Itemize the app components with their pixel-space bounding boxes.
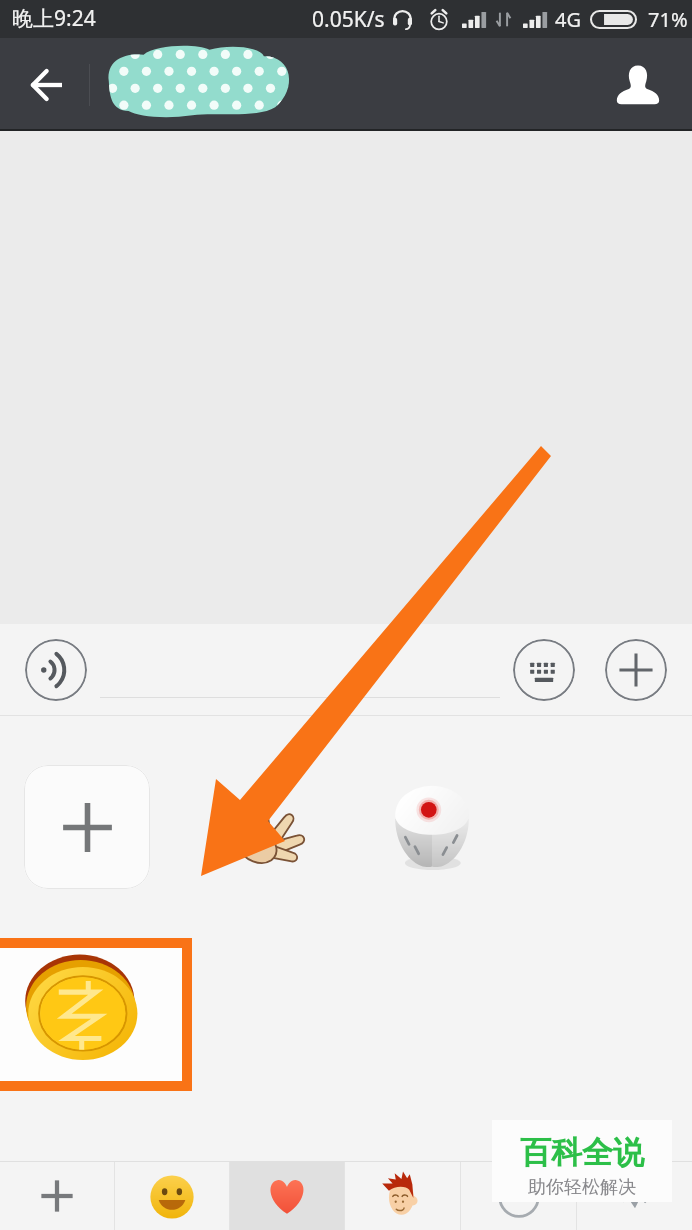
button[interactable]: Stickers xyxy=(345,1161,460,1230)
button[interactable]: Voice message xyxy=(25,639,87,701)
button[interactable]: Coin sticker xyxy=(0,938,192,1091)
button[interactable]: Emoticons xyxy=(461,1161,576,1230)
button[interactable]: Back xyxy=(0,38,92,131)
staticText: 71% xyxy=(648,6,688,33)
staticText: 晚上9:24 xyxy=(12,4,96,33)
button[interactable]: Contact info xyxy=(584,38,692,131)
button[interactable]: Add xyxy=(0,1161,114,1230)
button[interactable]: Smileys xyxy=(115,1161,229,1230)
button[interactable]: Favorites xyxy=(230,1161,344,1230)
button[interactable]: Keyboard xyxy=(513,639,575,701)
button[interactable]: Settings xyxy=(577,1161,692,1230)
button[interactable]: More xyxy=(605,639,667,701)
staticText: 0.05K/s xyxy=(312,5,385,34)
button[interactable]: Dice sticker xyxy=(392,784,472,870)
staticText: 百科全说 xyxy=(520,1133,644,1172)
staticText: 4G xyxy=(555,6,581,33)
button[interactable]: Add sticker xyxy=(24,765,150,889)
button[interactable]: Hand sticker xyxy=(231,778,315,862)
staticText: 助你轻松解决 xyxy=(528,1176,636,1199)
